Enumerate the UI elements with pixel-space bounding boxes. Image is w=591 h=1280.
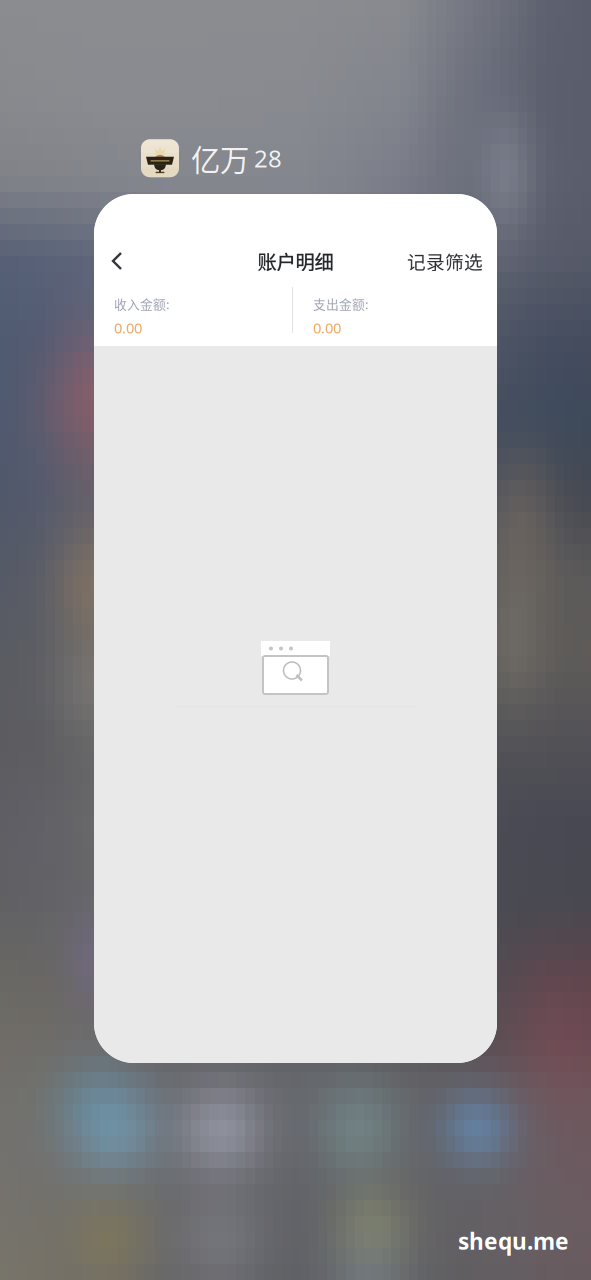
staticText: 记录筛选 <box>407 247 483 274</box>
staticText: 0.00 <box>313 318 341 337</box>
staticText: 0.00 <box>114 318 142 337</box>
staticText: 支出金额: <box>313 294 369 313</box>
staticText: 亿万 <box>191 137 249 179</box>
staticText: shequ.me <box>458 1226 569 1256</box>
staticText: 28 <box>254 142 282 174</box>
staticText: 收入金额: <box>114 294 170 313</box>
button[interactable]: Back <box>96 239 138 283</box>
button[interactable]: 记录筛选 <box>407 239 483 283</box>
staticText: 账户明细 <box>257 247 333 275</box>
